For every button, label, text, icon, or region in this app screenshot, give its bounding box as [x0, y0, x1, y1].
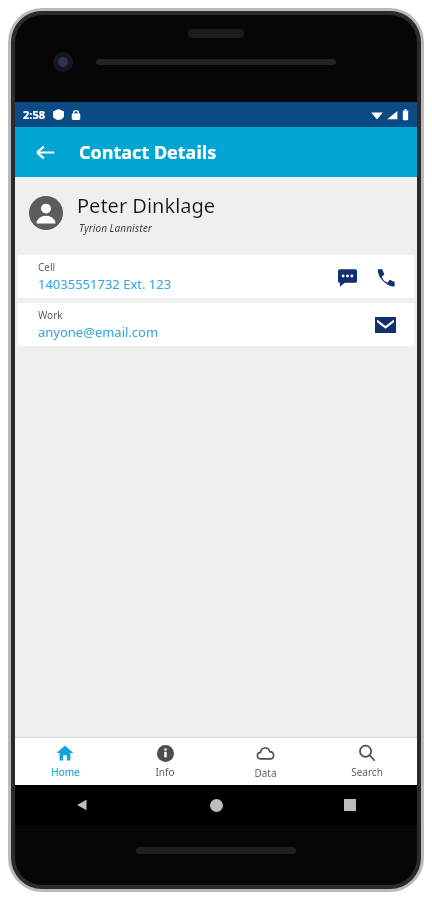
- button[interactable]: Back: [25, 132, 65, 172]
- button[interactable]: Data: [215, 738, 316, 785]
- button[interactable]: Send message: [332, 262, 362, 292]
- staticText: Tyrion Lannister: [79, 221, 152, 235]
- staticText: Contact Details: [79, 140, 217, 165]
- staticText: Cell: [38, 260, 56, 274]
- staticText: Home: [51, 765, 80, 779]
- staticText: 14035551732 Ext. 123: [38, 275, 172, 293]
- staticText: anyone@email.com: [38, 323, 159, 341]
- staticText: Peter Dinklage: [77, 192, 216, 219]
- staticText: Data: [254, 766, 277, 780]
- staticText: Work: [38, 308, 63, 322]
- button[interactable]: Info: [115, 738, 215, 785]
- button[interactable]: Home: [15, 738, 115, 785]
- button[interactable]: Recent apps: [283, 785, 417, 825]
- staticText: 2:58: [23, 107, 45, 122]
- staticText: Search: [351, 765, 383, 779]
- button[interactable]: Work: [18, 303, 414, 346]
- button[interactable]: Send email: [370, 310, 400, 340]
- button[interactable]: Back: [15, 785, 149, 825]
- staticText: Info: [155, 765, 175, 779]
- button[interactable]: Home: [149, 785, 283, 825]
- button[interactable]: Call: [370, 262, 400, 292]
- button[interactable]: Search: [316, 738, 417, 785]
- button[interactable]: Cell: [18, 255, 414, 298]
